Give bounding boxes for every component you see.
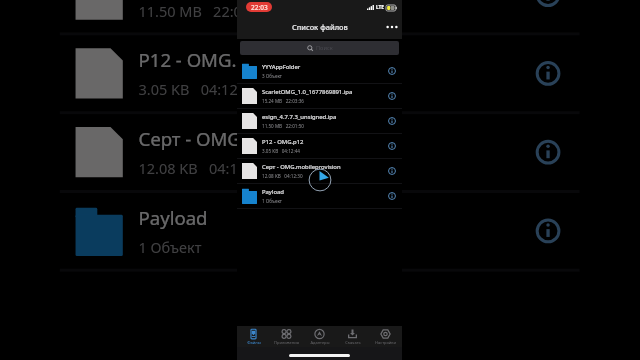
staticText: esign_4.7.7.3_unsigned.ipa [262, 113, 337, 121]
button[interactable]: P12 - OMG.p12 [237, 134, 402, 159]
staticText: 1 Объект [139, 237, 202, 256]
button[interactable]: P12 - OMG.p12 [60, 36, 580, 114]
button[interactable]: Файлы [237, 326, 270, 347]
button[interactable]: Адаптеры [303, 326, 336, 347]
button[interactable]: esign_4.7.7.3_unsigned.ipa [60, 0, 580, 36]
staticText: Серт - OMG.mobileprovision [139, 127, 387, 152]
button[interactable]: esign_4.7.7.3_unsigned.ipa [237, 109, 402, 134]
button[interactable]: Серт - OMG.mobileprovision [237, 159, 402, 184]
button[interactable]: Info [385, 84, 399, 108]
button[interactable]: Info [385, 109, 399, 133]
staticText: Поиск [316, 44, 333, 52]
button[interactable]: Info [385, 59, 399, 83]
staticText: YYYAppFolder [262, 63, 301, 71]
button[interactable]: Настройки [369, 326, 402, 347]
staticText: 12.08 KB 04:12:30 [139, 158, 268, 177]
button[interactable]: Info [526, 36, 570, 111]
staticText: Payload [139, 206, 208, 231]
staticText: 12.08 KB 04:12:30 [262, 173, 303, 179]
staticText: ScarletOMG_1.0_1677869891.ipa [262, 88, 353, 96]
button[interactable]: Info [526, 0, 570, 32]
button[interactable]: Payload [237, 184, 402, 209]
staticText: 15.24 MB 22:03:36 [262, 98, 304, 104]
staticText: Payload [262, 188, 284, 196]
staticText: 3.05 KB 04:12:44 [139, 80, 258, 99]
button[interactable]: Info [526, 114, 570, 190]
staticText: Приложения [274, 340, 299, 345]
staticText: P12 - OMG.p12 [262, 138, 304, 146]
staticText: Настройки [375, 340, 396, 345]
button[interactable]: ScarletOMG_1.0_1677869891.ipa [237, 84, 402, 109]
button[interactable]: Info [385, 159, 399, 183]
staticText: Список файлов [292, 22, 348, 32]
button[interactable]: Info [385, 134, 399, 158]
button[interactable]: More options [382, 14, 402, 39]
button[interactable]: Приложения [270, 326, 303, 347]
staticText: Файлы [247, 340, 261, 345]
staticText: P12 - OMG.p12 [139, 48, 271, 73]
staticText: 22:03 [251, 3, 268, 12]
staticText: 11.50 MB 22:01:50 [262, 123, 304, 129]
staticText: Адаптеры [310, 340, 330, 345]
button[interactable]: Payload [60, 193, 580, 272]
button[interactable]: Скачать [336, 326, 369, 347]
staticText: Скачать [345, 340, 361, 345]
staticText: 11.50 MB 22:01:50 [139, 1, 271, 20]
staticText: 1 Объект [262, 198, 282, 204]
button[interactable]: Info [526, 193, 570, 269]
staticText: 3.05 KB 04:12:44 [262, 148, 300, 154]
staticText: LTE [376, 4, 385, 11]
button[interactable]: Поиск [240, 41, 399, 55]
button[interactable]: Серт - OMG.mobileprovision [60, 114, 580, 193]
button[interactable]: Info [385, 184, 399, 208]
button[interactable]: YYYAppFolder [237, 59, 402, 84]
staticText: 3 Объект [262, 73, 282, 79]
staticText: Серт - OMG.mobileprovision [262, 163, 341, 171]
